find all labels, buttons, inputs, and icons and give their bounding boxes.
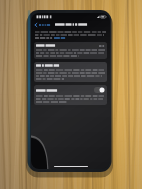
button[interactable]: Optimeret batteriopladning	[94, 87, 105, 93]
button[interactable]	[34, 62, 107, 82]
button[interactable]: Tilbage	[33, 22, 52, 28]
button[interactable]	[34, 42, 107, 59]
